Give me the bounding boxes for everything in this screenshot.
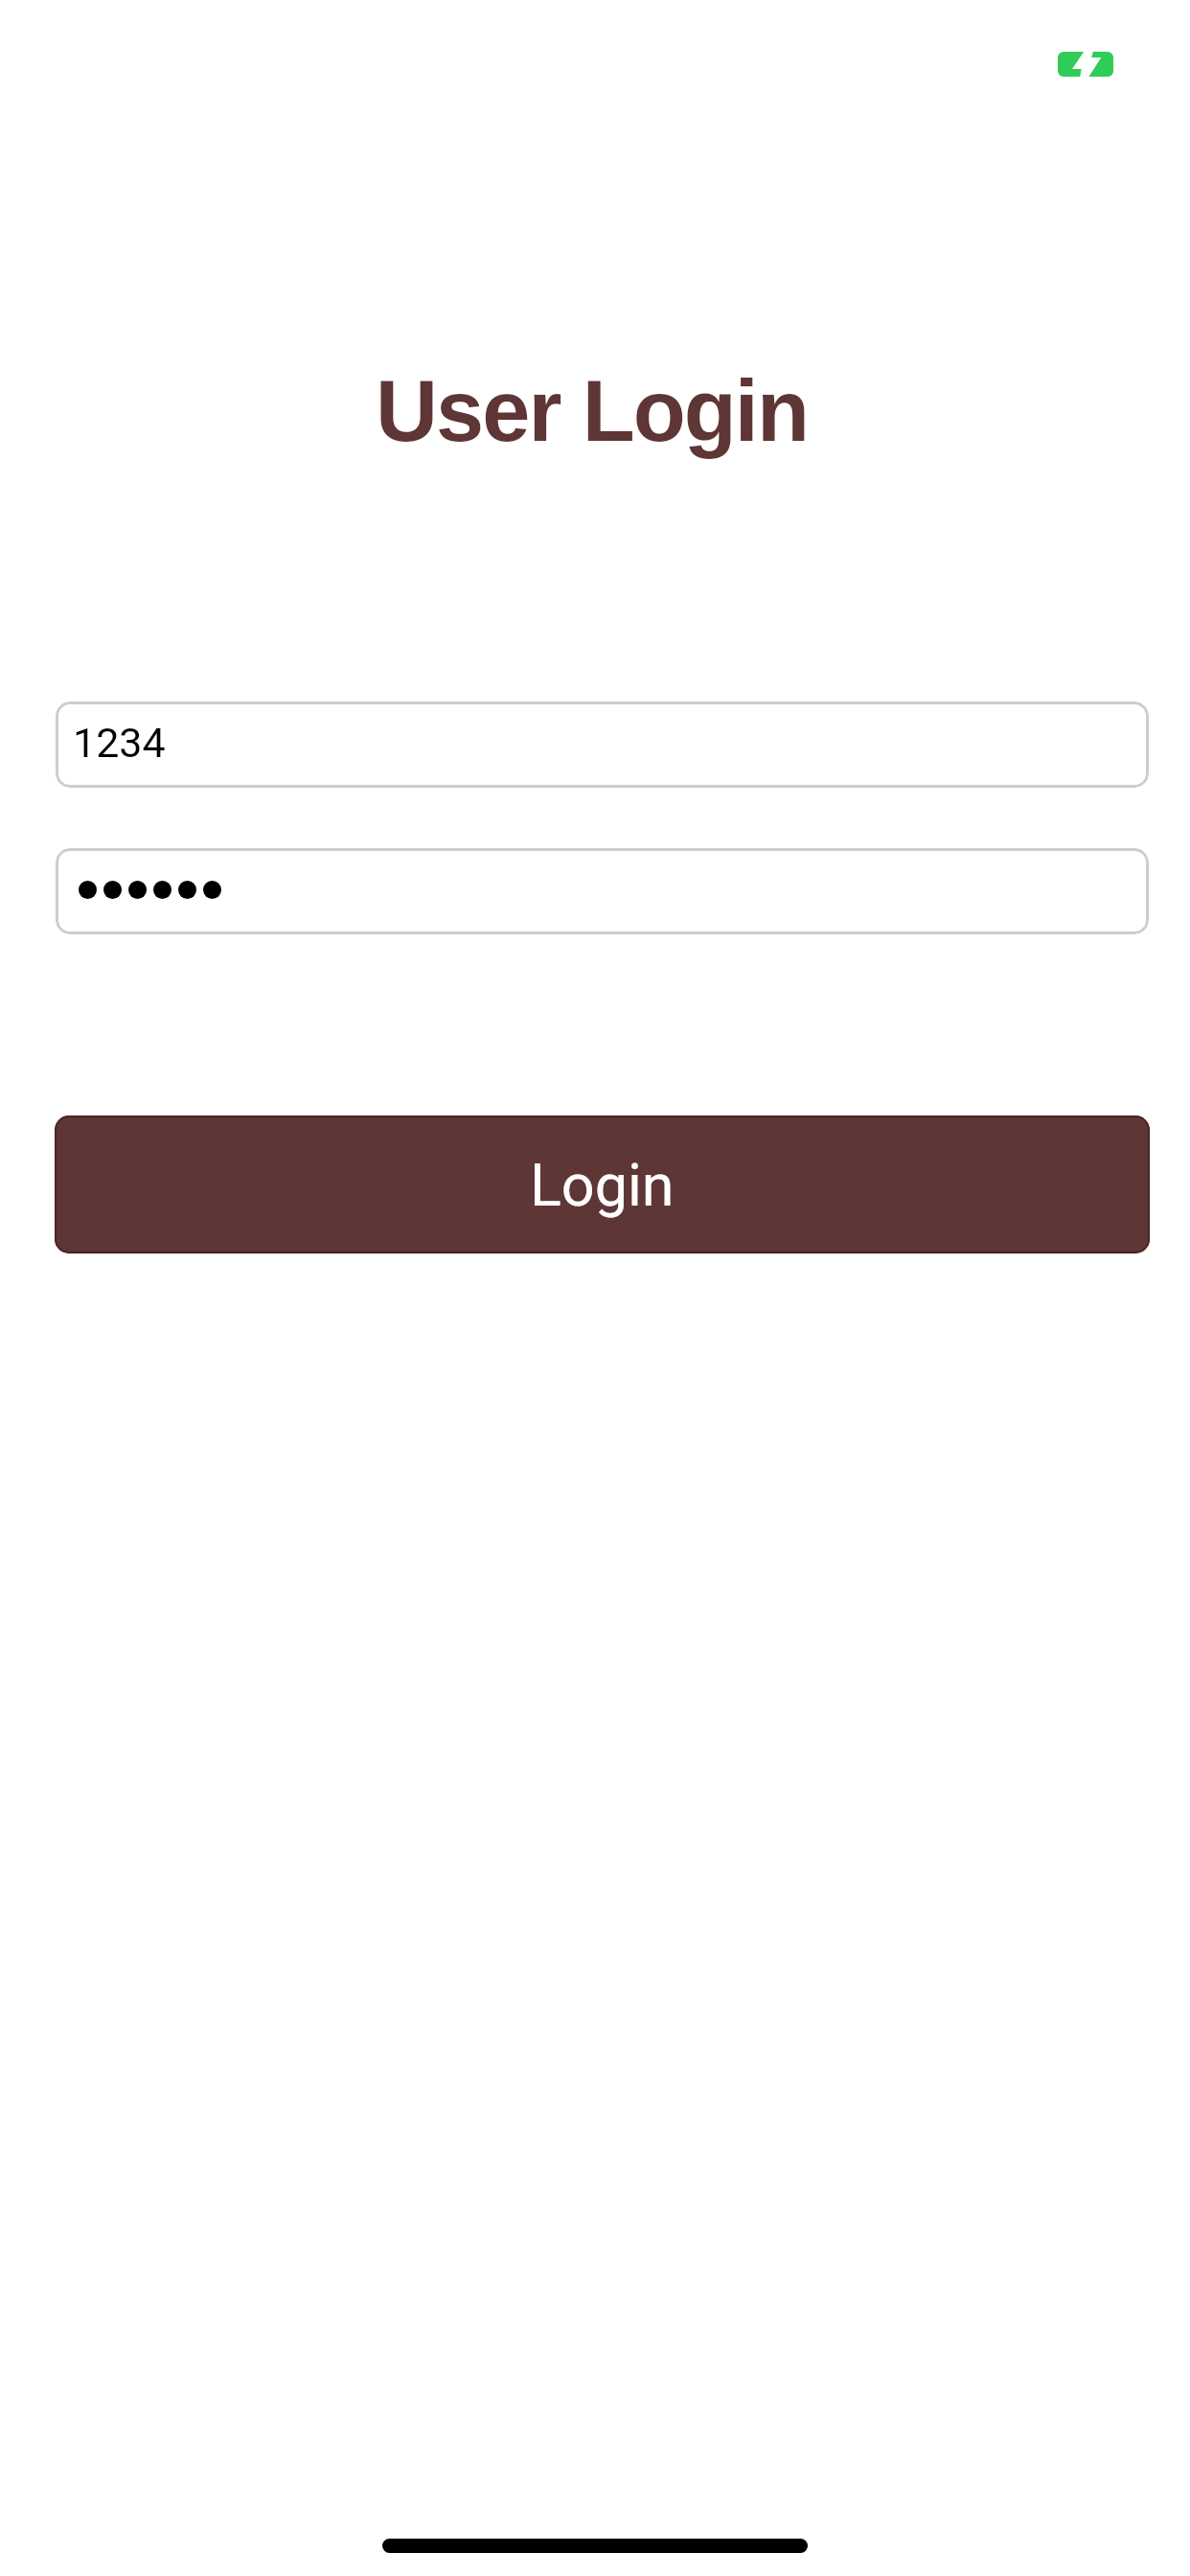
staticText: User Login bbox=[376, 363, 809, 460]
button[interactable] bbox=[56, 848, 1149, 934]
staticText: Login bbox=[530, 1151, 675, 1219]
button[interactable]: Login bbox=[55, 1115, 1150, 1253]
other: Battery charging bbox=[1058, 52, 1113, 77]
staticText: 1234 bbox=[73, 719, 166, 767]
button[interactable]: 1234 bbox=[56, 701, 1149, 788]
